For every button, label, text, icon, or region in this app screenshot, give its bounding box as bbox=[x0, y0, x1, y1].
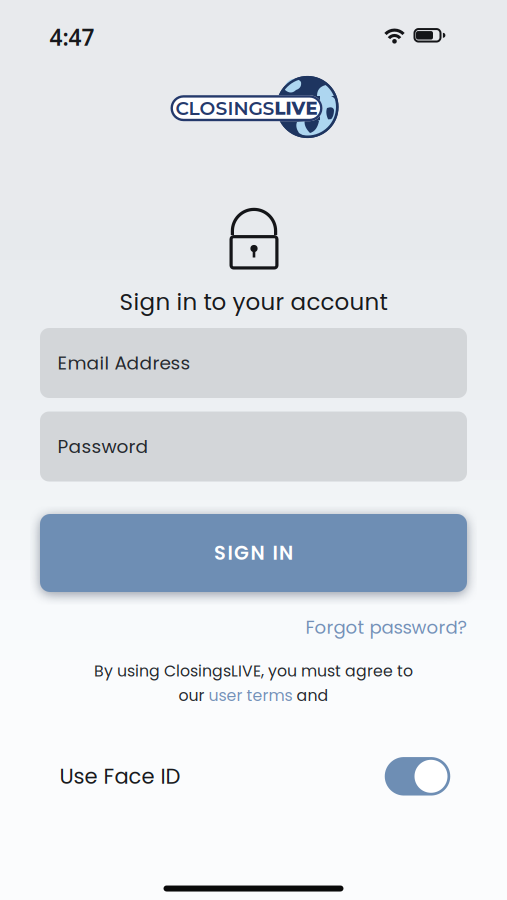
staticText: Use Face ID bbox=[59, 762, 180, 791]
staticText: 4:47 bbox=[49, 22, 94, 52]
button[interactable]: SIGN IN bbox=[40, 514, 467, 592]
staticText: our bbox=[178, 684, 208, 706]
staticText: LIVE bbox=[274, 97, 317, 119]
staticText: SIGN IN bbox=[214, 539, 293, 567]
button[interactable]: Email Address bbox=[40, 328, 467, 398]
button[interactable]: user terms bbox=[208, 684, 292, 706]
staticText: Password bbox=[57, 433, 148, 459]
staticText: By using ClosingsLIVE, you must agree to bbox=[94, 660, 413, 682]
staticText: Sign in to your account bbox=[119, 286, 387, 318]
staticText: Forgot password? bbox=[305, 615, 467, 640]
button[interactable]: Forgot password? bbox=[305, 615, 467, 640]
staticText: user terms bbox=[208, 684, 292, 706]
staticText: and bbox=[292, 684, 328, 706]
staticText: CLOSINGS bbox=[175, 97, 274, 120]
button[interactable]: Password bbox=[40, 411, 467, 481]
button[interactable]: Use Face ID bbox=[385, 757, 450, 795]
staticText: Email Address bbox=[57, 350, 190, 376]
